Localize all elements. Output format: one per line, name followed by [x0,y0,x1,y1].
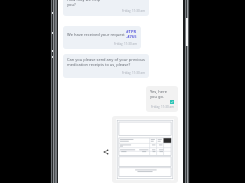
button[interactable]: How may we help you? [63,0,149,16]
staticText: Can you please send any of your previous… [67,57,145,67]
staticText: Friday, 11:30 am [67,42,137,46]
button[interactable]: Medication receipt attachment [116,119,174,180]
staticText: #TPR-4765 [126,29,137,39]
staticText: How may we help you? [67,0,101,7]
button[interactable]: Yes, here you go. [146,86,178,112]
button[interactable]: Can you please send any of your previous… [63,54,149,78]
staticText: Yes, here you go. [150,89,174,99]
button[interactable]: Medication receipt attachment [112,116,178,183]
staticText: Friday, 11:30 am [67,9,145,13]
button[interactable]: Share [103,149,109,155]
staticText: Friday, 11:30 am [67,71,145,75]
button[interactable]: We have received your request [63,26,141,49]
staticText: Friday, 11:30 am [150,105,174,109]
staticText: We have received your request [67,32,126,37]
